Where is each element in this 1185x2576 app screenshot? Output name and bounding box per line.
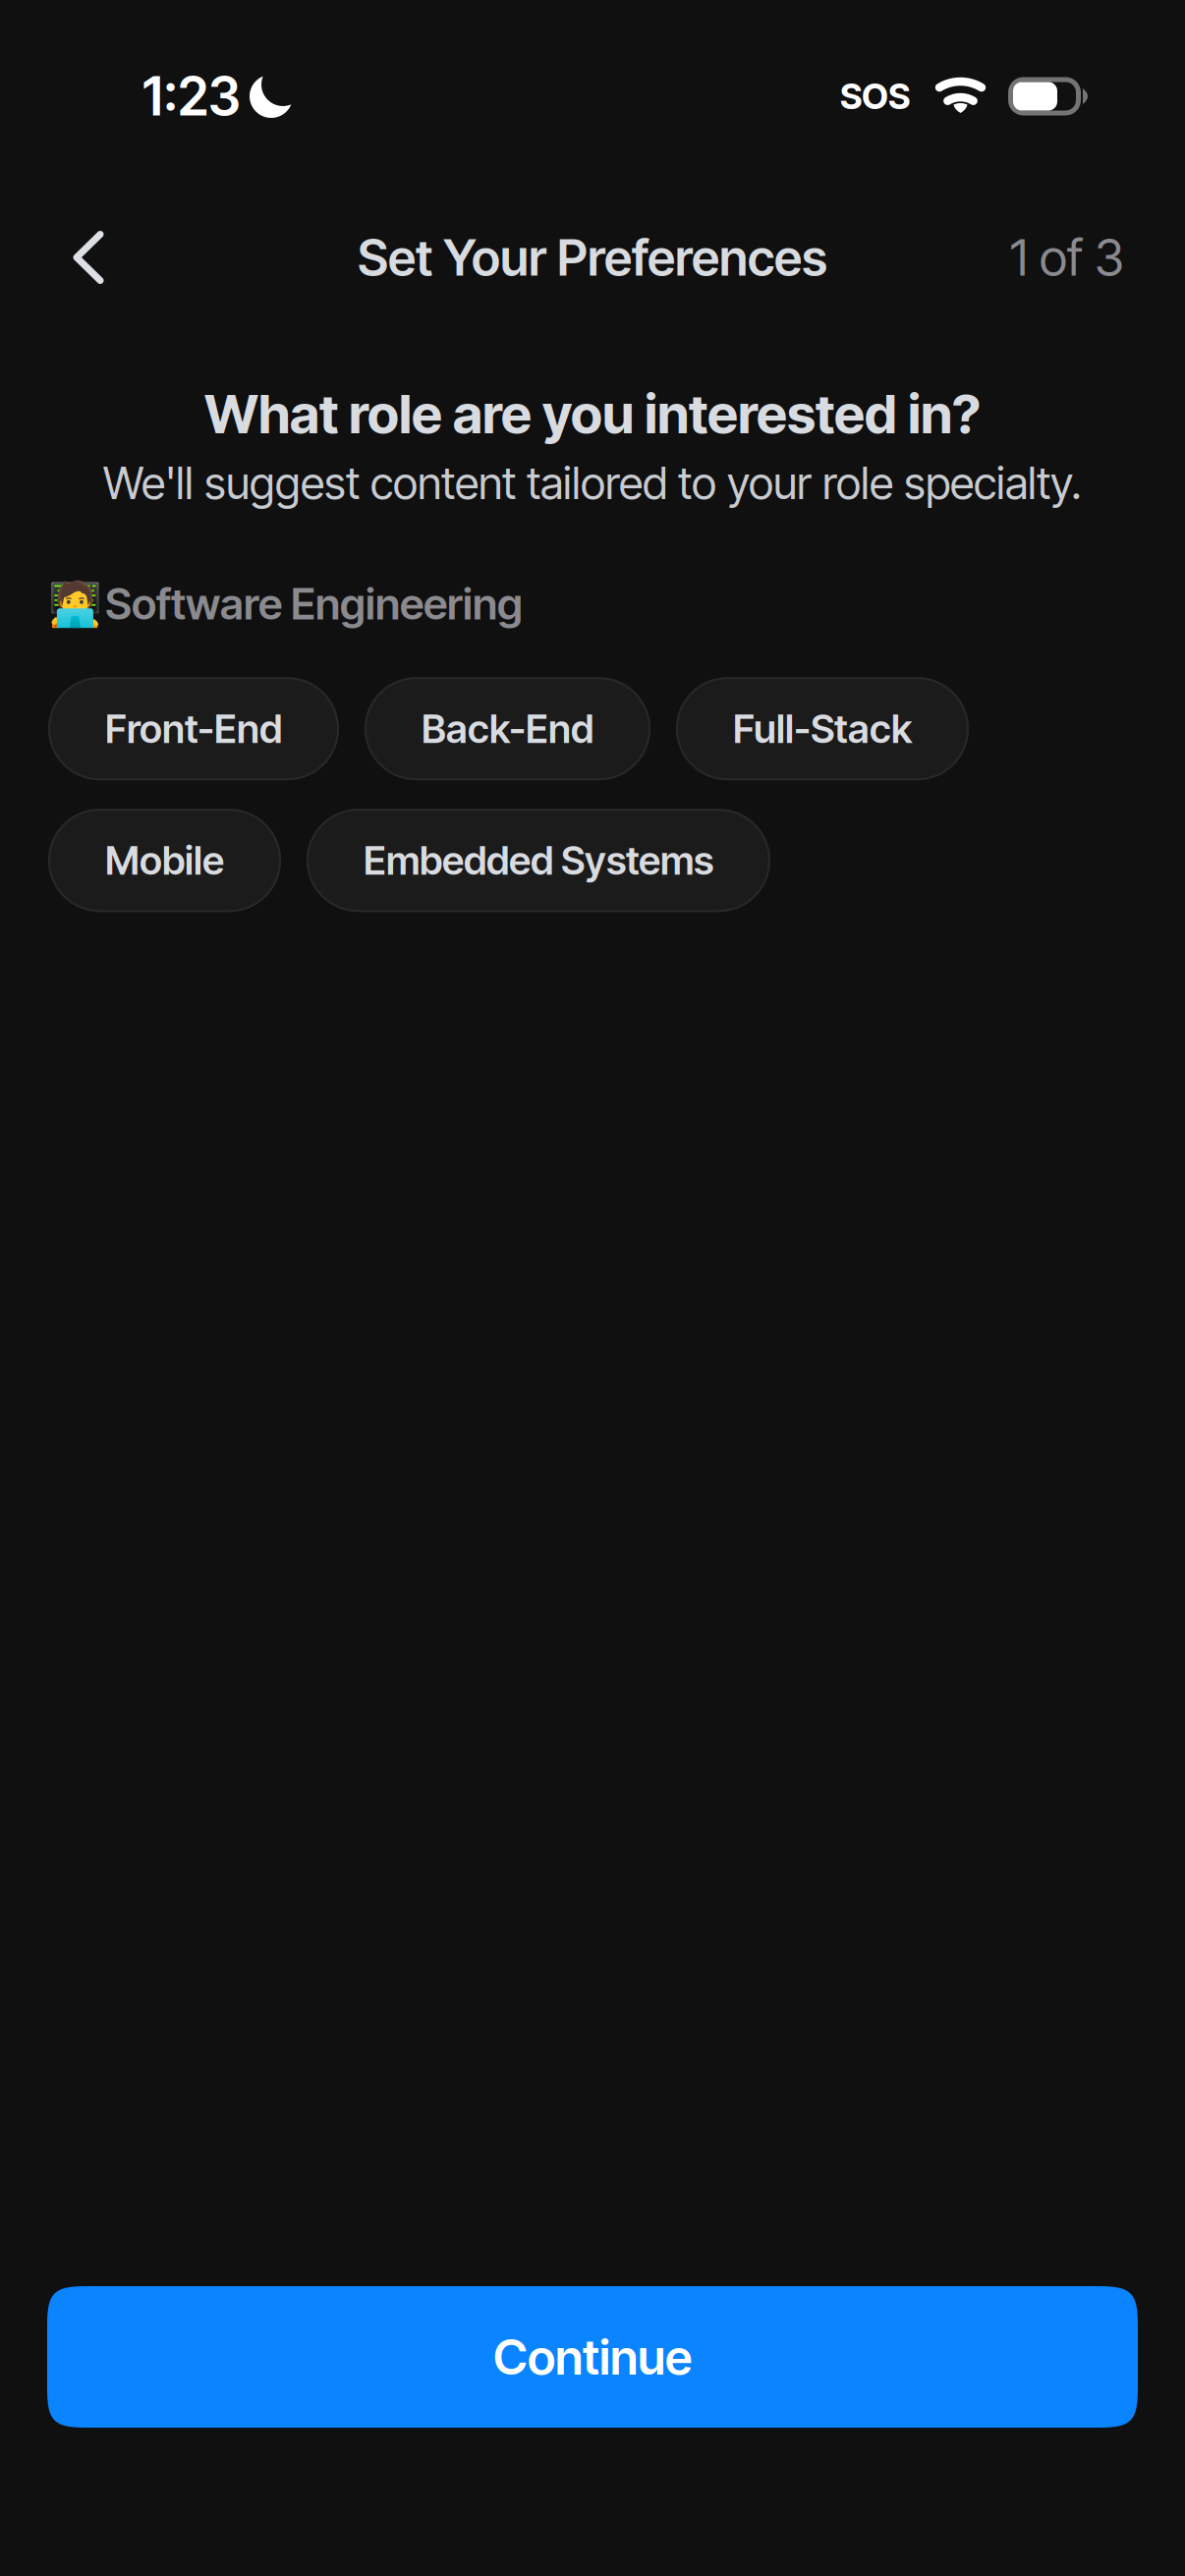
button[interactable]: Mobile bbox=[48, 809, 281, 912]
staticText: 1:23 bbox=[142, 65, 241, 128]
staticText: Back-End bbox=[422, 705, 593, 752]
staticText: Front-End bbox=[105, 705, 282, 752]
button[interactable]: Full-Stack bbox=[676, 677, 969, 780]
button[interactable]: Front-End bbox=[48, 677, 339, 780]
staticText: Software Engineering bbox=[105, 578, 523, 630]
button[interactable]: Embedded Systems bbox=[307, 809, 770, 912]
staticText: Continue bbox=[493, 2328, 692, 2386]
staticText: We'll suggest content tailored to your r… bbox=[103, 456, 1082, 510]
button[interactable]: Back bbox=[37, 193, 140, 322]
staticText: SOS bbox=[840, 75, 910, 118]
button[interactable]: Back-End bbox=[365, 677, 650, 780]
staticText: 1 of 3 bbox=[1010, 227, 1124, 287]
button[interactable]: Continue bbox=[47, 2286, 1138, 2428]
staticText: Set Your Preferences bbox=[358, 227, 827, 287]
staticText: What role are you interested in? bbox=[204, 381, 981, 446]
staticText: Embedded Systems bbox=[364, 837, 713, 884]
staticText: 🧑‍💻 bbox=[48, 578, 102, 629]
staticText: Mobile bbox=[105, 837, 224, 884]
staticText: Full-Stack bbox=[733, 705, 912, 752]
